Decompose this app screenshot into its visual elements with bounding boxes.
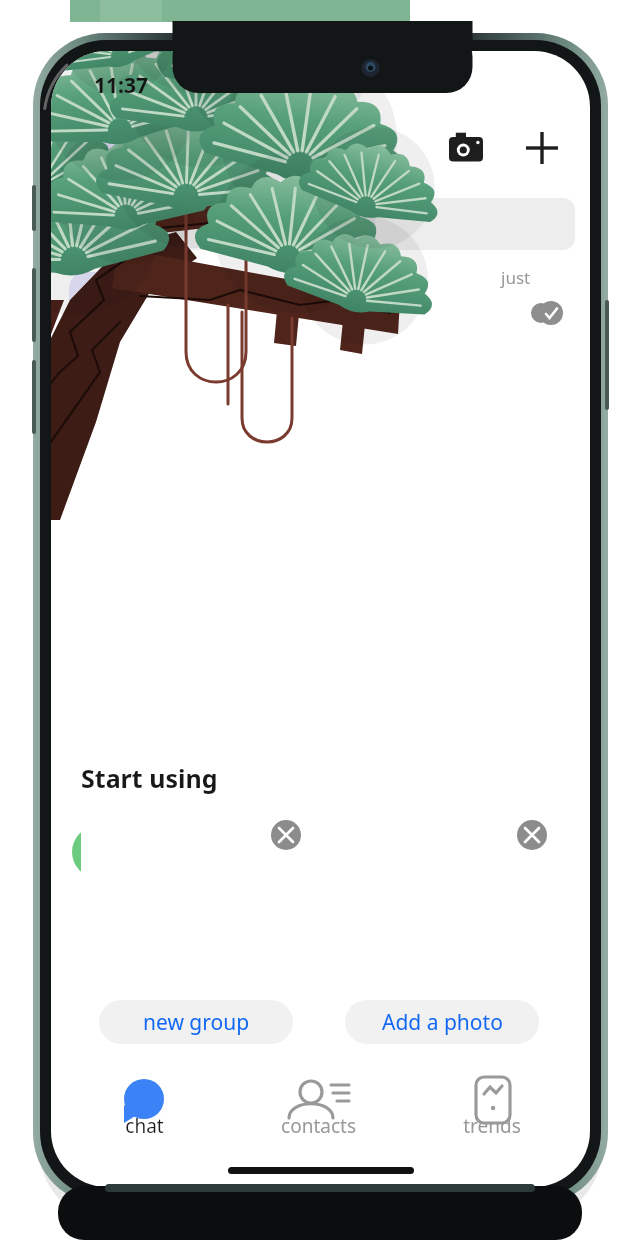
button[interactable]: Dismiss new group <box>81 810 311 1058</box>
staticText: Start using <box>81 761 218 795</box>
button[interactable]: Dismiss Add a photo <box>327 810 557 1058</box>
button[interactable]: contacts <box>264 1075 372 1147</box>
button[interactable]: Dismiss Add a photo <box>517 820 547 850</box>
button[interactable]: chat <box>90 1075 198 1147</box>
staticText: chat <box>125 1113 164 1139</box>
staticText: contacts <box>281 1113 356 1139</box>
staticText: just <box>501 266 531 289</box>
staticText: trends <box>463 1113 521 1139</box>
button[interactable]: Camera <box>440 122 492 174</box>
staticText: 11:37 <box>94 71 148 100</box>
staticText: new group <box>143 1008 250 1037</box>
button[interactable]: trends <box>438 1075 546 1147</box>
button[interactable]: Add a photo <box>345 1000 539 1044</box>
button[interactable]: new group <box>99 1000 293 1044</box>
staticText: Add a photo <box>382 1008 503 1037</box>
button[interactable]: New chat <box>516 122 568 174</box>
button[interactable]: Dismiss new group <box>271 820 301 850</box>
